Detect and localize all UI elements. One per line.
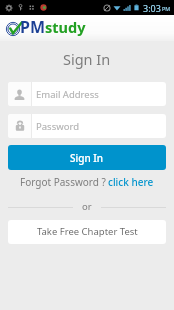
staticText: Sign In [63,49,111,69]
button[interactable]: Sign In [8,145,166,170]
staticText: Password [36,120,79,133]
button[interactable]: click here [108,175,154,189]
button[interactable]: Password [8,114,166,138]
staticText: Email Address [36,88,99,101]
staticText: PM [162,5,171,12]
staticText: Sign In [70,151,104,165]
staticText: click here [108,175,154,189]
button[interactable]: Email Address [8,82,166,106]
staticText: Forgot Password ? [20,175,106,189]
staticText: Take Free Chapter Test [37,225,138,238]
staticText: or [82,200,92,213]
staticText: PMstudy [20,16,86,38]
button[interactable]: Take Free Chapter Test [8,220,166,244]
staticText: 3:03 [143,2,161,14]
